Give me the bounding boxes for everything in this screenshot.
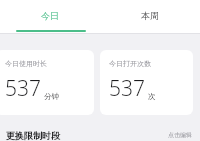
staticText: 今日使用时长 (5, 59, 47, 68)
button[interactable]: 今日 (0, 0, 100, 34)
staticText: 537 (5, 74, 41, 103)
staticText: 今日 (41, 10, 59, 21)
staticText: 更换限制时段 (6, 130, 60, 141)
staticText: 537 (109, 74, 145, 103)
staticText: 本周 (141, 10, 159, 21)
button[interactable]: 本周 (100, 0, 200, 34)
button[interactable]: 今日打开次数 (100, 50, 193, 115)
staticText: 次 (148, 92, 156, 101)
staticText: 今日打开次数 (109, 59, 151, 68)
button[interactable]: 更换限制时段 (0, 127, 200, 141)
button[interactable]: 今日使用时长 (0, 50, 94, 115)
staticText: 分钟 (44, 92, 59, 101)
staticText: 点击编辑 (168, 131, 192, 139)
